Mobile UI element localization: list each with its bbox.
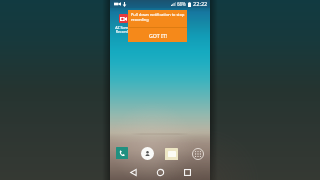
- button[interactable]: Messaging: [165, 148, 178, 160]
- button[interactable]: Recents: [180, 165, 194, 179]
- button[interactable]: Home: [153, 165, 167, 179]
- button[interactable]: Apps: [192, 148, 204, 160]
- button[interactable]: Back: [126, 165, 140, 179]
- staticText: 22:22: [193, 0, 208, 8]
- staticText: AZ Screen Recorder: [115, 25, 132, 35]
- button[interactable]: Contacts: [141, 147, 154, 160]
- staticText: Pull down notification to stop recording: [131, 12, 185, 22]
- button[interactable]: Phone: [116, 147, 128, 159]
- button[interactable]: GOT IT!: [128, 28, 187, 42]
- staticText: GOT IT!: [149, 32, 167, 39]
- button[interactable]: AZ Screen Recorder: [119, 14, 128, 23]
- staticText: 68%: [177, 1, 186, 7]
